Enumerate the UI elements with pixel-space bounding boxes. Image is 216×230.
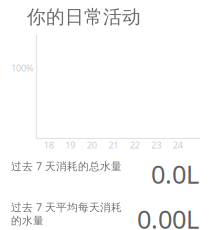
staticText: 24 [173, 139, 183, 151]
staticText: 20 [87, 139, 97, 151]
staticText: 21 [108, 139, 118, 151]
staticText: 0.00L [137, 202, 199, 230]
staticText: 18 [44, 139, 54, 151]
staticText: 过去 7 天消耗的总水量 [11, 159, 122, 173]
staticText: 过去 7 天平均每天消耗的水量 [11, 200, 122, 227]
staticText: 22 [130, 139, 140, 151]
staticText: 23 [151, 139, 161, 151]
staticText: 你的日常活动 [27, 5, 141, 28]
staticText: 0.0L [151, 157, 199, 191]
staticText: 19 [65, 139, 75, 151]
staticText: 100% [11, 62, 34, 74]
